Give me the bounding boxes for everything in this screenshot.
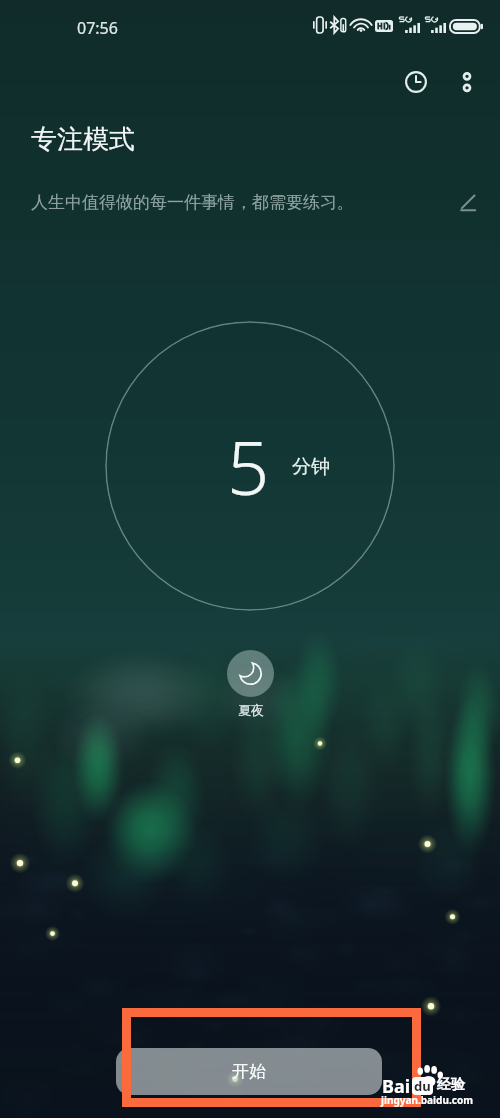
staticText: 专注模式 (31, 123, 135, 156)
staticText: 人生中值得做的每一件事情，都需要练习。 (31, 192, 448, 213)
button[interactable]: History (393, 59, 439, 105)
staticText: Bai (382, 1074, 411, 1099)
staticText: 夏夜 (238, 702, 264, 718)
button[interactable]: 5 (105, 321, 395, 611)
button[interactable]: More options (444, 59, 490, 105)
button[interactable]: 开始 (116, 1048, 382, 1095)
button[interactable]: Edit (448, 182, 488, 222)
staticText: 经验 (437, 1076, 465, 1094)
staticText: du (414, 1077, 431, 1095)
staticText: 开始 (232, 1061, 266, 1082)
button[interactable]: 夏夜 (227, 650, 274, 718)
staticText: 07:56 (77, 17, 118, 39)
staticText: 5 (227, 416, 270, 517)
staticText: 分钟 (292, 455, 330, 479)
staticText: jingyan.baidu.com (381, 1093, 473, 1107)
